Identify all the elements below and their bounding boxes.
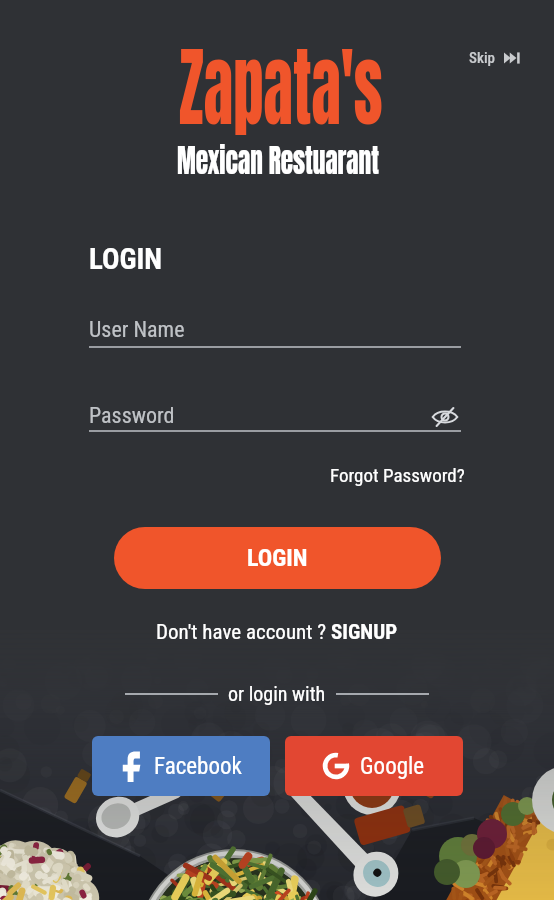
staticText: Don't have account ?: [156, 620, 331, 645]
staticText: Password: [89, 403, 175, 429]
staticText: LOGIN: [89, 242, 163, 276]
button[interactable]: Show password: [431, 403, 459, 431]
button[interactable]: LOGIN: [114, 527, 441, 589]
other: Skip: [504, 50, 520, 66]
staticText: LOGIN: [247, 544, 308, 572]
staticText: User Name: [89, 317, 185, 343]
button[interactable]: Skip: [463, 45, 526, 71]
staticText: or login with: [228, 682, 326, 705]
staticText: Mexican Restuarant: [177, 136, 379, 184]
staticText: Facebook: [154, 753, 242, 780]
staticText: Google: [360, 753, 425, 780]
button[interactable]: Google: [285, 736, 463, 796]
button[interactable]: Facebook: [92, 736, 270, 796]
staticText: Skip: [469, 49, 495, 67]
button[interactable]: Forgot Password?: [330, 464, 465, 486]
staticText: SIGNUP: [331, 620, 398, 645]
button[interactable]: Don't have account ?: [156, 620, 398, 645]
staticText: Zapata's: [179, 20, 383, 152]
